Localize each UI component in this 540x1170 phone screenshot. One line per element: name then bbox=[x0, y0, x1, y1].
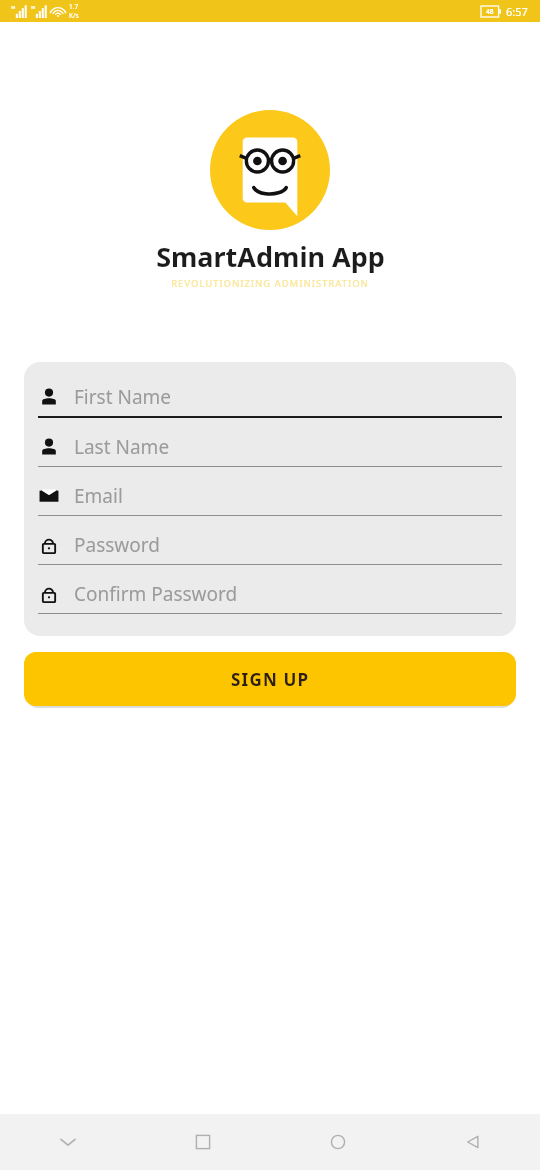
staticText: K/s bbox=[69, 11, 79, 20]
staticText: Email bbox=[74, 483, 123, 509]
button[interactable]: SIGN UP bbox=[24, 652, 516, 706]
button[interactable]: Password bbox=[38, 532, 502, 565]
button[interactable]: Confirm Password bbox=[38, 581, 502, 614]
button[interactable]: Last Name bbox=[38, 434, 502, 467]
button[interactable]: Back bbox=[405, 1114, 540, 1170]
button[interactable]: First Name bbox=[38, 384, 502, 418]
staticText: Last Name bbox=[74, 434, 170, 460]
staticText: SIGN UP bbox=[231, 668, 310, 691]
staticText: 6:57 bbox=[506, 4, 528, 19]
button[interactable]: Hide keyboard bbox=[0, 1114, 135, 1170]
staticText: Confirm Password bbox=[74, 581, 238, 607]
staticText: 48 bbox=[486, 7, 494, 16]
button[interactable]: Recents bbox=[135, 1114, 270, 1170]
button[interactable]: Home bbox=[270, 1114, 405, 1170]
button[interactable]: Email bbox=[38, 483, 502, 516]
staticText: REVOLUTIONIZING ADMINISTRATION bbox=[171, 277, 369, 290]
staticText: SmartAdmin App bbox=[156, 238, 385, 275]
staticText: First Name bbox=[74, 384, 172, 410]
staticText: 1.7 bbox=[69, 2, 79, 11]
staticText: Password bbox=[74, 532, 160, 558]
